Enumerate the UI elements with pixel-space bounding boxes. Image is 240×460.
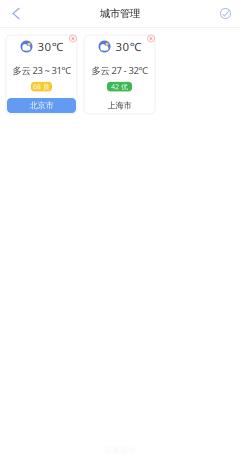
staticText: 42 优 xyxy=(111,82,128,91)
staticText: 城市管理 xyxy=(100,7,140,20)
staticText: 多云 23 ~ 31℃ xyxy=(12,64,70,77)
staticText: 30℃ xyxy=(115,39,140,54)
button[interactable]: 北京市 xyxy=(7,98,76,113)
staticText: 北京市 xyxy=(29,100,53,111)
staticText: 多云 27 - 32℃ xyxy=(91,64,147,77)
button[interactable]: Remove 上海市 xyxy=(147,35,154,42)
staticText: 68 良 xyxy=(33,82,50,91)
staticText: 上海市 xyxy=(107,100,131,111)
button[interactable]: Back xyxy=(0,0,29,27)
button[interactable]: Confirm xyxy=(212,0,240,27)
button[interactable]: Remove 北京市 xyxy=(69,35,76,42)
button[interactable]: 上海市 xyxy=(85,98,154,113)
staticText: 30℃ xyxy=(37,39,62,54)
